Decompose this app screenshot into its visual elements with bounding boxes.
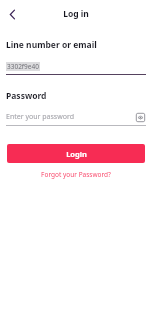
staticText: Login bbox=[66, 149, 87, 159]
button[interactable]: Login bbox=[7, 144, 145, 163]
button[interactable]: Show password bbox=[135, 112, 146, 123]
button[interactable]: Enter your password bbox=[6, 110, 146, 124]
staticText: Enter your password bbox=[6, 112, 135, 122]
button[interactable]: Back bbox=[2, 4, 22, 24]
staticText: Log in bbox=[63, 8, 89, 20]
button[interactable]: 3302f9e40 bbox=[6, 59, 146, 73]
staticText: Forgot your Password? bbox=[41, 170, 111, 179]
button[interactable]: Forgot your Password? bbox=[37, 168, 115, 181]
staticText: Password bbox=[6, 90, 47, 102]
staticText: Line number or email bbox=[6, 39, 97, 51]
staticText: 3302f9e40 bbox=[7, 62, 39, 71]
